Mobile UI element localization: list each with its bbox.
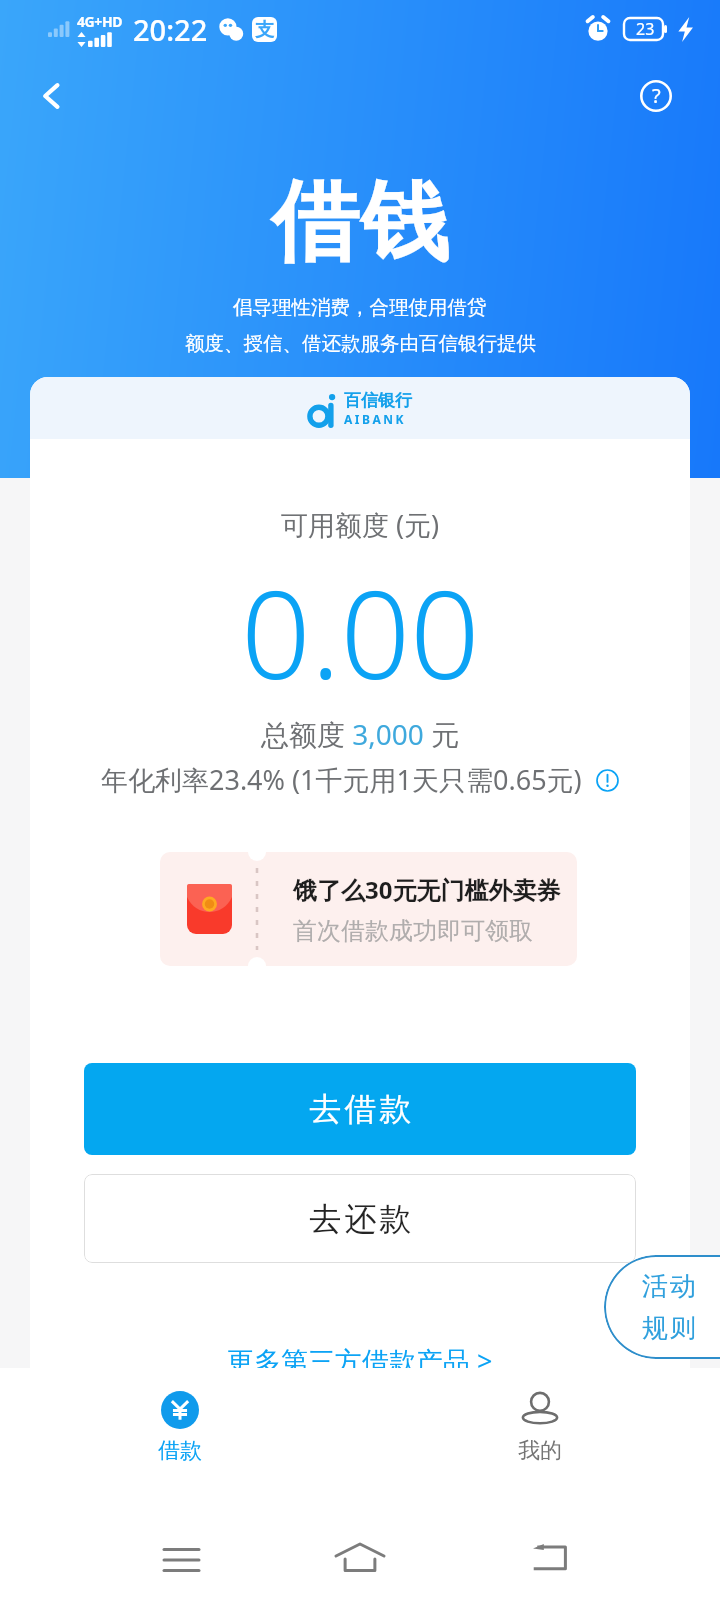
button[interactable]: Rate info bbox=[594, 767, 620, 793]
button[interactable]: Recent apps bbox=[151, 1530, 211, 1590]
staticText: 0.00 bbox=[241, 549, 480, 715]
staticText: 我的 bbox=[518, 1437, 562, 1465]
button[interactable]: 借款 bbox=[128, 1381, 232, 1475]
staticText: 年化利率23.4% (1千元用1天只需0.65元) bbox=[101, 761, 582, 798]
staticText: 借款 bbox=[158, 1437, 202, 1465]
staticText: 可用额度 (元) bbox=[281, 506, 440, 543]
staticText: 饿了么30元无门槛外卖券 bbox=[293, 873, 561, 906]
staticText: 更多第三方借款产品 > bbox=[227, 1342, 493, 1368]
staticText: 活动 bbox=[641, 1270, 697, 1303]
staticText: AIBANK bbox=[344, 411, 406, 427]
staticText: 20:22 bbox=[133, 10, 208, 49]
staticText: 首次借款成功即可领取 bbox=[293, 916, 533, 946]
button[interactable]: Help bbox=[620, 60, 692, 132]
button[interactable]: 去借款 bbox=[84, 1063, 636, 1155]
staticText: 百信银行 bbox=[344, 390, 412, 411]
staticText: 支 bbox=[255, 18, 274, 42]
staticText: 总额度 3,000 元 bbox=[261, 715, 460, 753]
staticText: ? bbox=[652, 82, 661, 109]
button[interactable]: 饿了么30元无门槛外卖券 bbox=[160, 852, 577, 966]
staticText: 倡导理性消费，合理使用借贷 bbox=[233, 295, 487, 320]
staticText: 23 bbox=[636, 18, 655, 40]
staticText: 去还款 bbox=[308, 1199, 413, 1239]
staticText: 额度、授信、借还款服务由百信银行提供 bbox=[185, 331, 536, 356]
staticText: 借钱 bbox=[270, 167, 450, 278]
button[interactable]: 活动 bbox=[604, 1255, 720, 1359]
button[interactable]: Back bbox=[521, 1527, 581, 1587]
staticText: 规则 bbox=[641, 1312, 697, 1345]
staticText: 4G+HD bbox=[77, 12, 123, 31]
button[interactable]: Back bbox=[16, 60, 88, 132]
button[interactable]: 去还款 bbox=[84, 1174, 636, 1263]
button[interactable]: Home bbox=[330, 1529, 390, 1589]
button[interactable]: 更多第三方借款产品 > bbox=[30, 1342, 690, 1368]
staticText: 去借款 bbox=[308, 1089, 413, 1129]
button[interactable]: 我的 bbox=[488, 1381, 592, 1475]
